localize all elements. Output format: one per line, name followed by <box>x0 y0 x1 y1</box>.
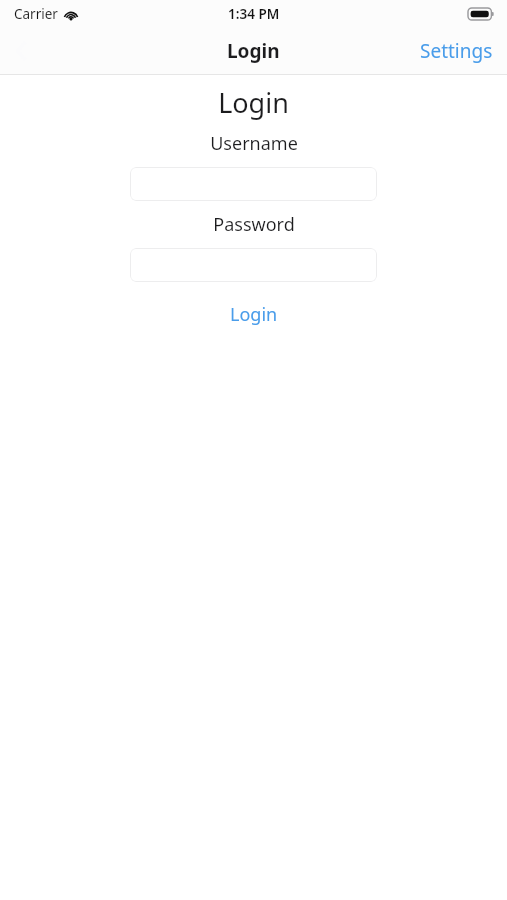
staticText: Carrier <box>14 5 58 23</box>
staticText: Username <box>210 131 298 156</box>
staticText: Login <box>218 84 289 121</box>
button[interactable]: Settings <box>406 30 507 72</box>
button[interactable]: Login <box>212 296 296 333</box>
staticText: Settings <box>420 38 493 64</box>
staticText: Login <box>227 38 280 64</box>
staticText: Password <box>213 212 295 237</box>
staticText: 1:34 PM <box>228 5 280 23</box>
button[interactable]: Text field <box>130 167 377 201</box>
button[interactable]: Text field <box>130 248 377 282</box>
staticText: Login <box>230 302 278 327</box>
